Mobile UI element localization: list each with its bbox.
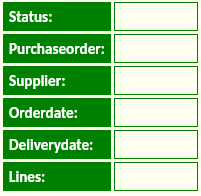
button[interactable]: Lines value (114, 162, 198, 191)
button[interactable]: Supplier value (114, 66, 198, 95)
staticText: Status: (9, 8, 53, 27)
button[interactable]: Lines: (3, 162, 111, 191)
staticText: Deliverydate: (9, 136, 94, 155)
button[interactable]: Purchaseorder value (114, 34, 198, 63)
button[interactable]: Deliverydate: (3, 130, 111, 159)
staticText: Supplier: (9, 72, 66, 91)
button[interactable]: Orderdate value (114, 98, 198, 127)
button[interactable]: Orderdate: (3, 98, 111, 127)
staticText: Purchaseorder: (9, 40, 105, 59)
button[interactable]: Supplier: (3, 66, 111, 95)
staticText: Lines: (9, 168, 46, 187)
staticText: Orderdate: (9, 104, 78, 123)
button[interactable]: Deliverydate value (114, 130, 198, 159)
button[interactable]: Purchaseorder: (3, 34, 111, 63)
button[interactable]: Status: (3, 2, 111, 31)
button[interactable]: Status value (114, 2, 198, 31)
